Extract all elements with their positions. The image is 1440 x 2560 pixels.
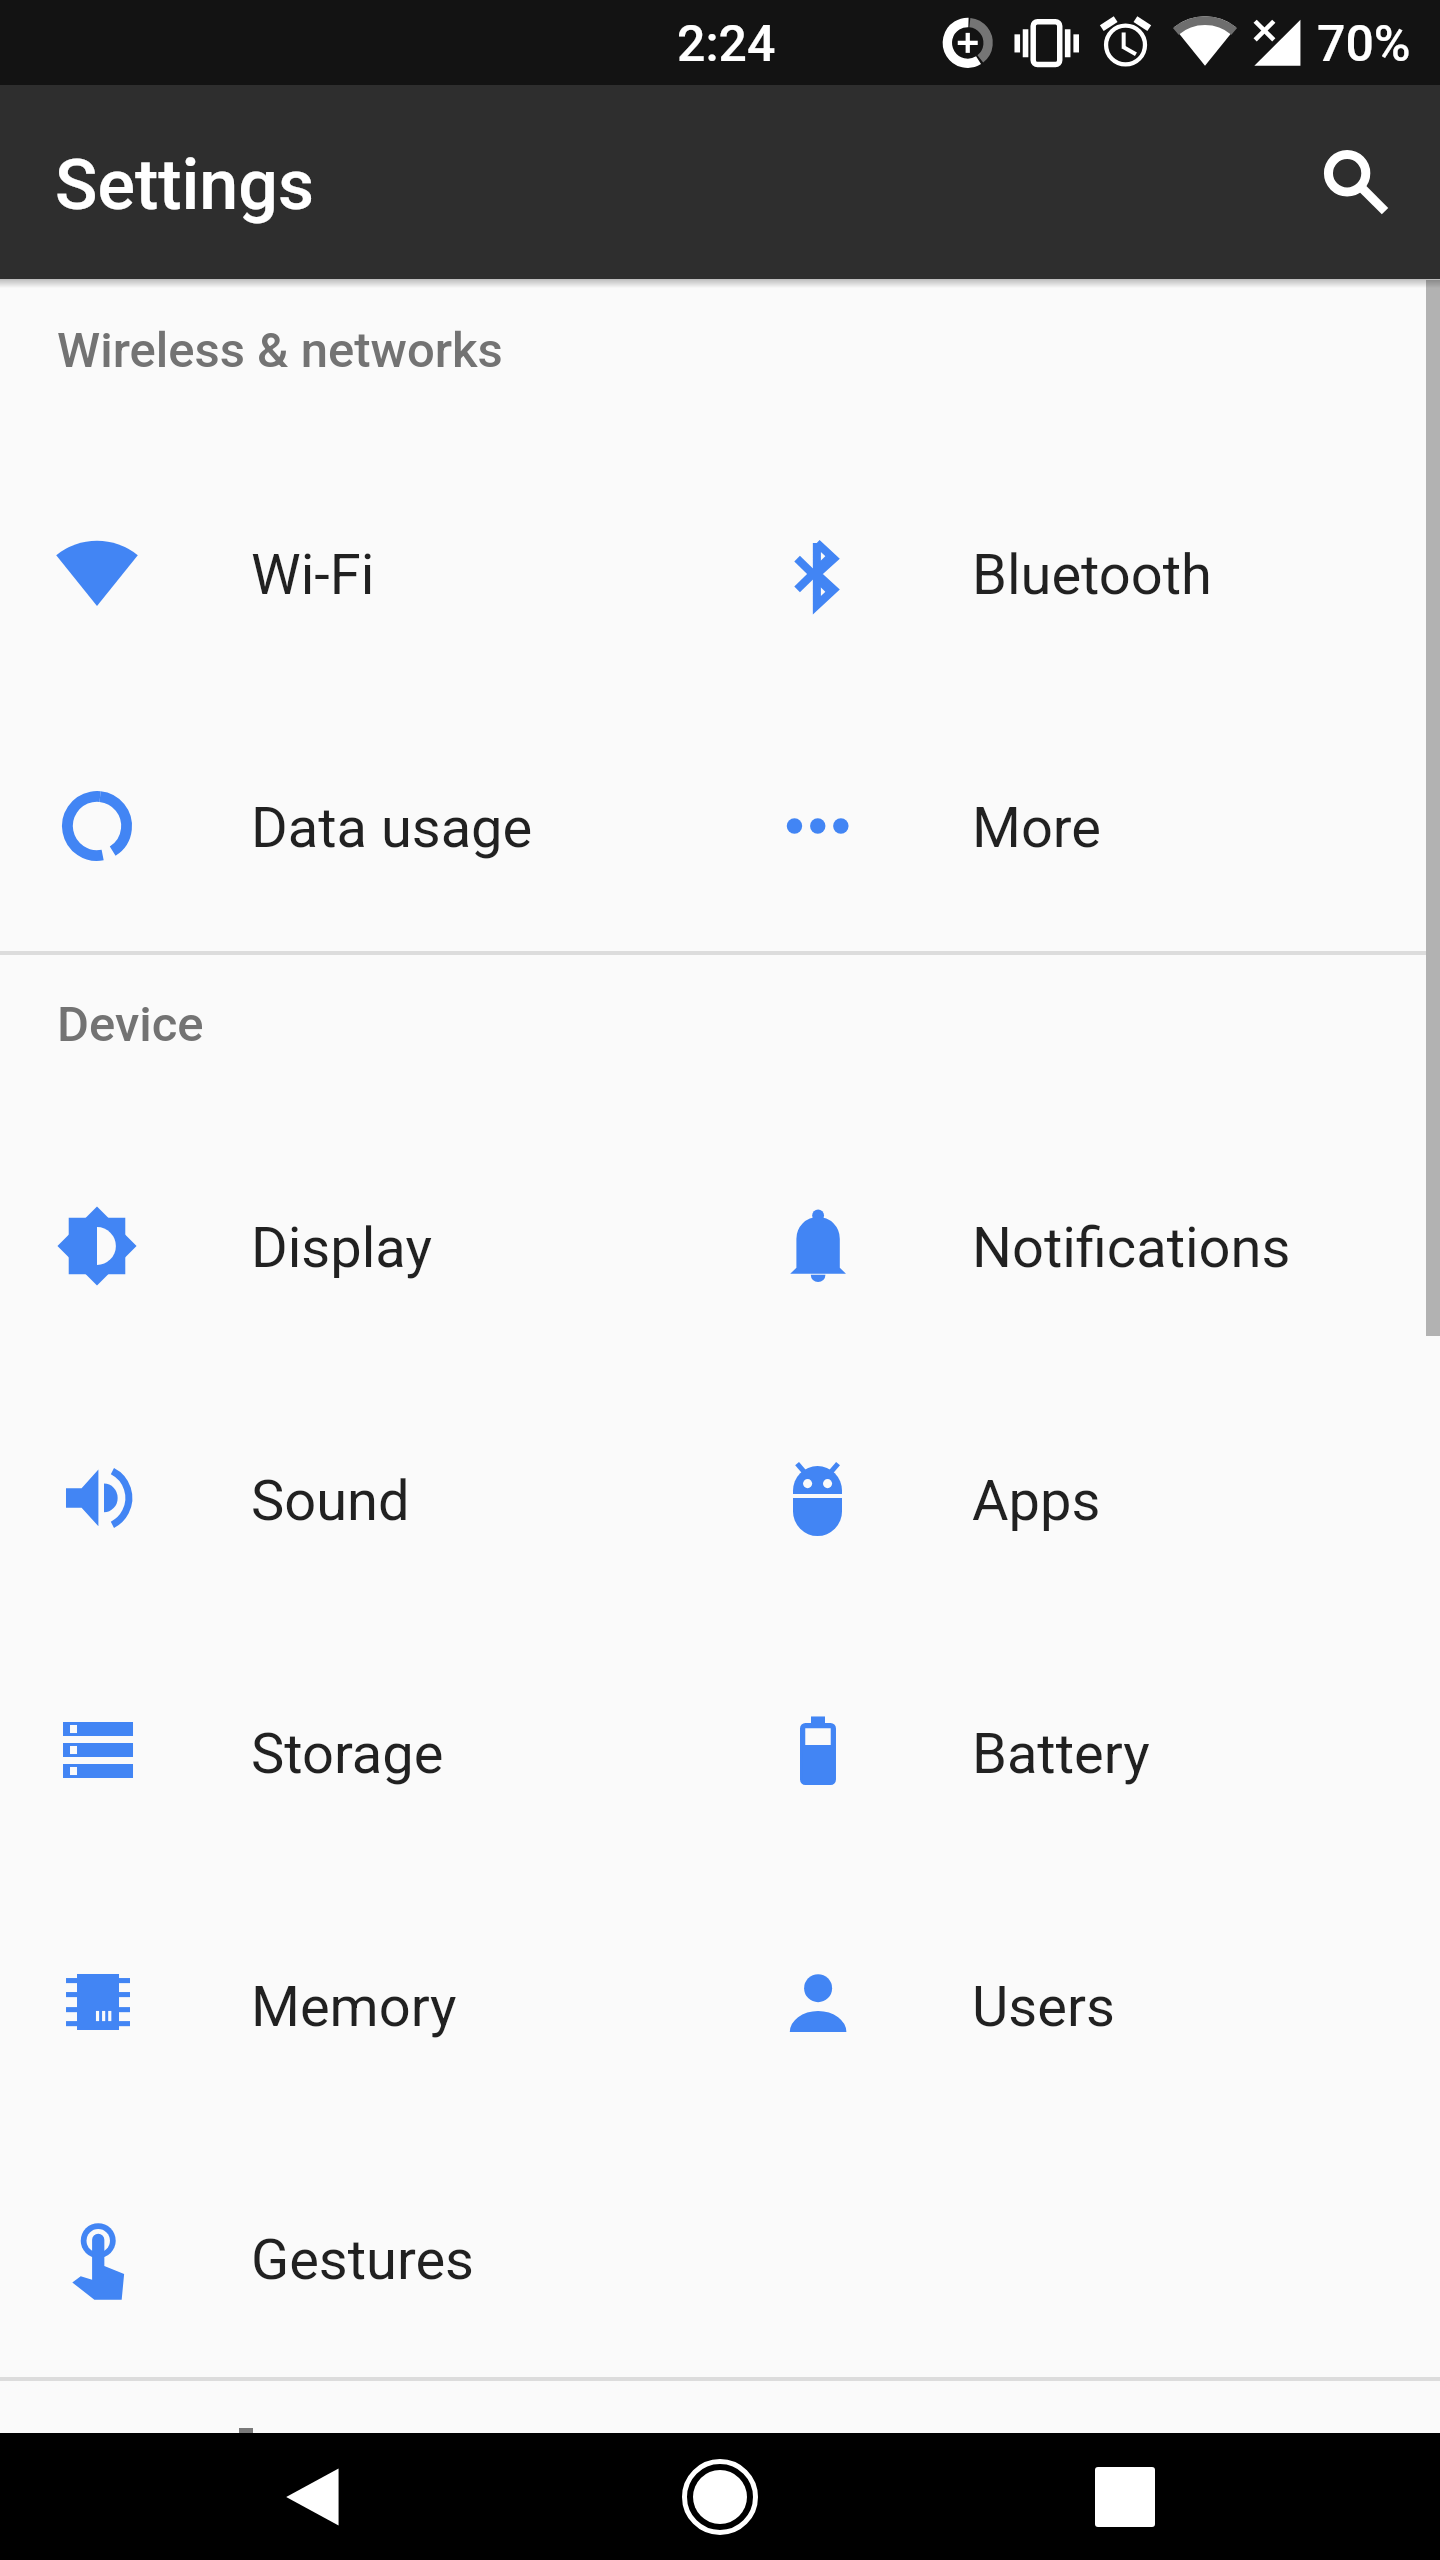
staticText: Apps: [972, 1468, 1101, 1534]
staticText: Notifications: [972, 1215, 1291, 1281]
button[interactable]: More: [718, 700, 1440, 952]
staticText: Data usage: [251, 795, 533, 861]
staticText: Users: [972, 1974, 1115, 2040]
button[interactable]: Wi-Fi: [0, 447, 722, 699]
staticText: Memory: [251, 1974, 457, 2040]
staticText: Wi-Fi: [251, 542, 375, 608]
staticText: Bluetooth: [972, 542, 1212, 608]
staticText: Gestures: [251, 2227, 474, 2293]
staticText: 2:24: [677, 15, 776, 74]
staticText: Device: [57, 996, 204, 1053]
button[interactable]: Storage: [0, 1626, 722, 1878]
button[interactable]: Back: [245, 2440, 385, 2553]
button[interactable]: Gestures: [0, 2132, 722, 2384]
button[interactable]: Sound: [0, 1373, 722, 1625]
staticText: Sound: [251, 1468, 410, 1534]
button[interactable]: Search: [1292, 119, 1418, 245]
staticText: Storage: [251, 1721, 444, 1787]
button[interactable]: Apps: [718, 1373, 1440, 1625]
button[interactable]: Data usage: [0, 700, 722, 952]
button[interactable]: Memory: [0, 1879, 722, 2131]
staticText: Wireless & networks: [57, 322, 503, 379]
button[interactable]: Users: [718, 1879, 1440, 2131]
staticText: Battery: [972, 1721, 1150, 1787]
button[interactable]: Home: [650, 2440, 790, 2553]
button[interactable]: Recents: [1055, 2440, 1195, 2553]
staticText: 70%: [1317, 15, 1411, 74]
button[interactable]: Display: [0, 1120, 722, 1372]
staticText: Display: [251, 1215, 432, 1281]
button[interactable]: Bluetooth: [718, 447, 1440, 699]
button[interactable]: Battery: [718, 1626, 1440, 1878]
staticText: Settings: [55, 144, 315, 226]
staticText: More: [972, 795, 1101, 861]
button[interactable]: Notifications: [718, 1120, 1440, 1372]
